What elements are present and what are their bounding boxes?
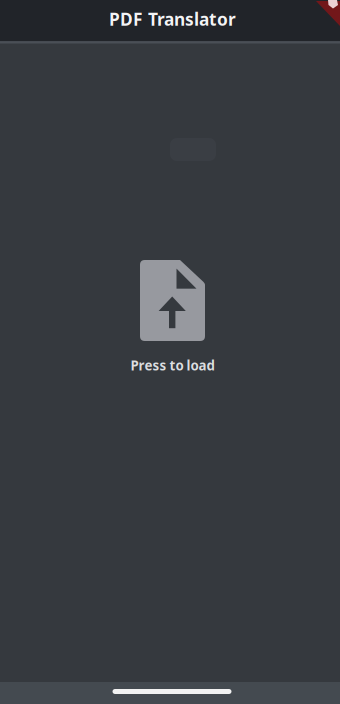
button[interactable]: Upgrade to Pro (316, 0, 340, 27)
staticText: PDF Translator (109, 7, 236, 30)
button[interactable]: Press to load (97, 248, 247, 386)
staticText: Press to load (130, 356, 214, 374)
